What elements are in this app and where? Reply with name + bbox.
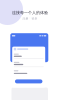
button[interactable] [15,79,42,83]
staticText: 注册 · 登录 [22,17,37,20]
staticText: 连接每一个人的体验 [12,10,48,15]
